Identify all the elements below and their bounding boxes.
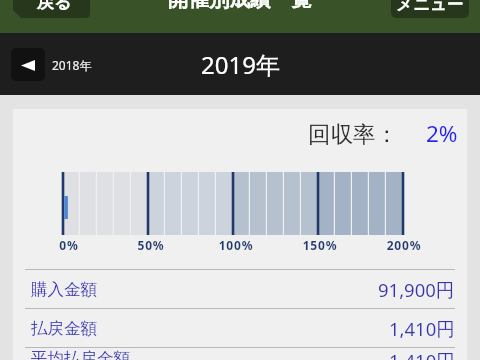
other: Previous year [11,48,45,81]
staticText: 150% [290,237,350,253]
staticText: 0% [39,237,99,253]
staticText: 2% [426,118,458,149]
staticText: 平均払戻金額 [31,348,130,360]
button[interactable]: メニュー [391,0,469,18]
button[interactable]: 平均払戻金額 [13,347,467,360]
staticText: 開催別成績一覧 [168,0,312,12]
button[interactable]: 戻る [13,0,90,18]
button[interactable]: 払戻金額 [13,308,467,347]
staticText: メニュー [396,0,464,15]
staticText: 50% [121,237,181,253]
staticText: 払戻金額 [31,318,97,339]
staticText: 戻る [37,0,72,13]
staticText: 1,410円 [389,348,455,360]
staticText: 回収率： [308,120,398,148]
staticText: 1,410円 [389,316,455,341]
staticText: 200% [374,237,434,253]
staticText: 100% [206,237,266,253]
staticText: 91,900円 [378,277,455,302]
staticText: 2018年 [52,57,92,73]
staticText: 2019年 [201,48,280,81]
staticText: 購入金額 [31,279,97,300]
button[interactable]: Previous year [11,48,85,81]
button[interactable]: 購入金額 [13,269,467,308]
